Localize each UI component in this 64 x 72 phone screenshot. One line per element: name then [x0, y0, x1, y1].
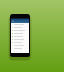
button[interactable] — [11, 41, 29, 44]
button[interactable] — [11, 29, 29, 32]
button[interactable] — [11, 38, 29, 41]
button[interactable]: Open navigation menu — [11, 19, 29, 23]
button[interactable] — [11, 26, 29, 29]
button[interactable] — [11, 32, 29, 35]
button[interactable] — [11, 23, 29, 26]
button[interactable] — [11, 44, 29, 47]
button[interactable] — [11, 35, 29, 38]
button[interactable] — [11, 47, 29, 50]
